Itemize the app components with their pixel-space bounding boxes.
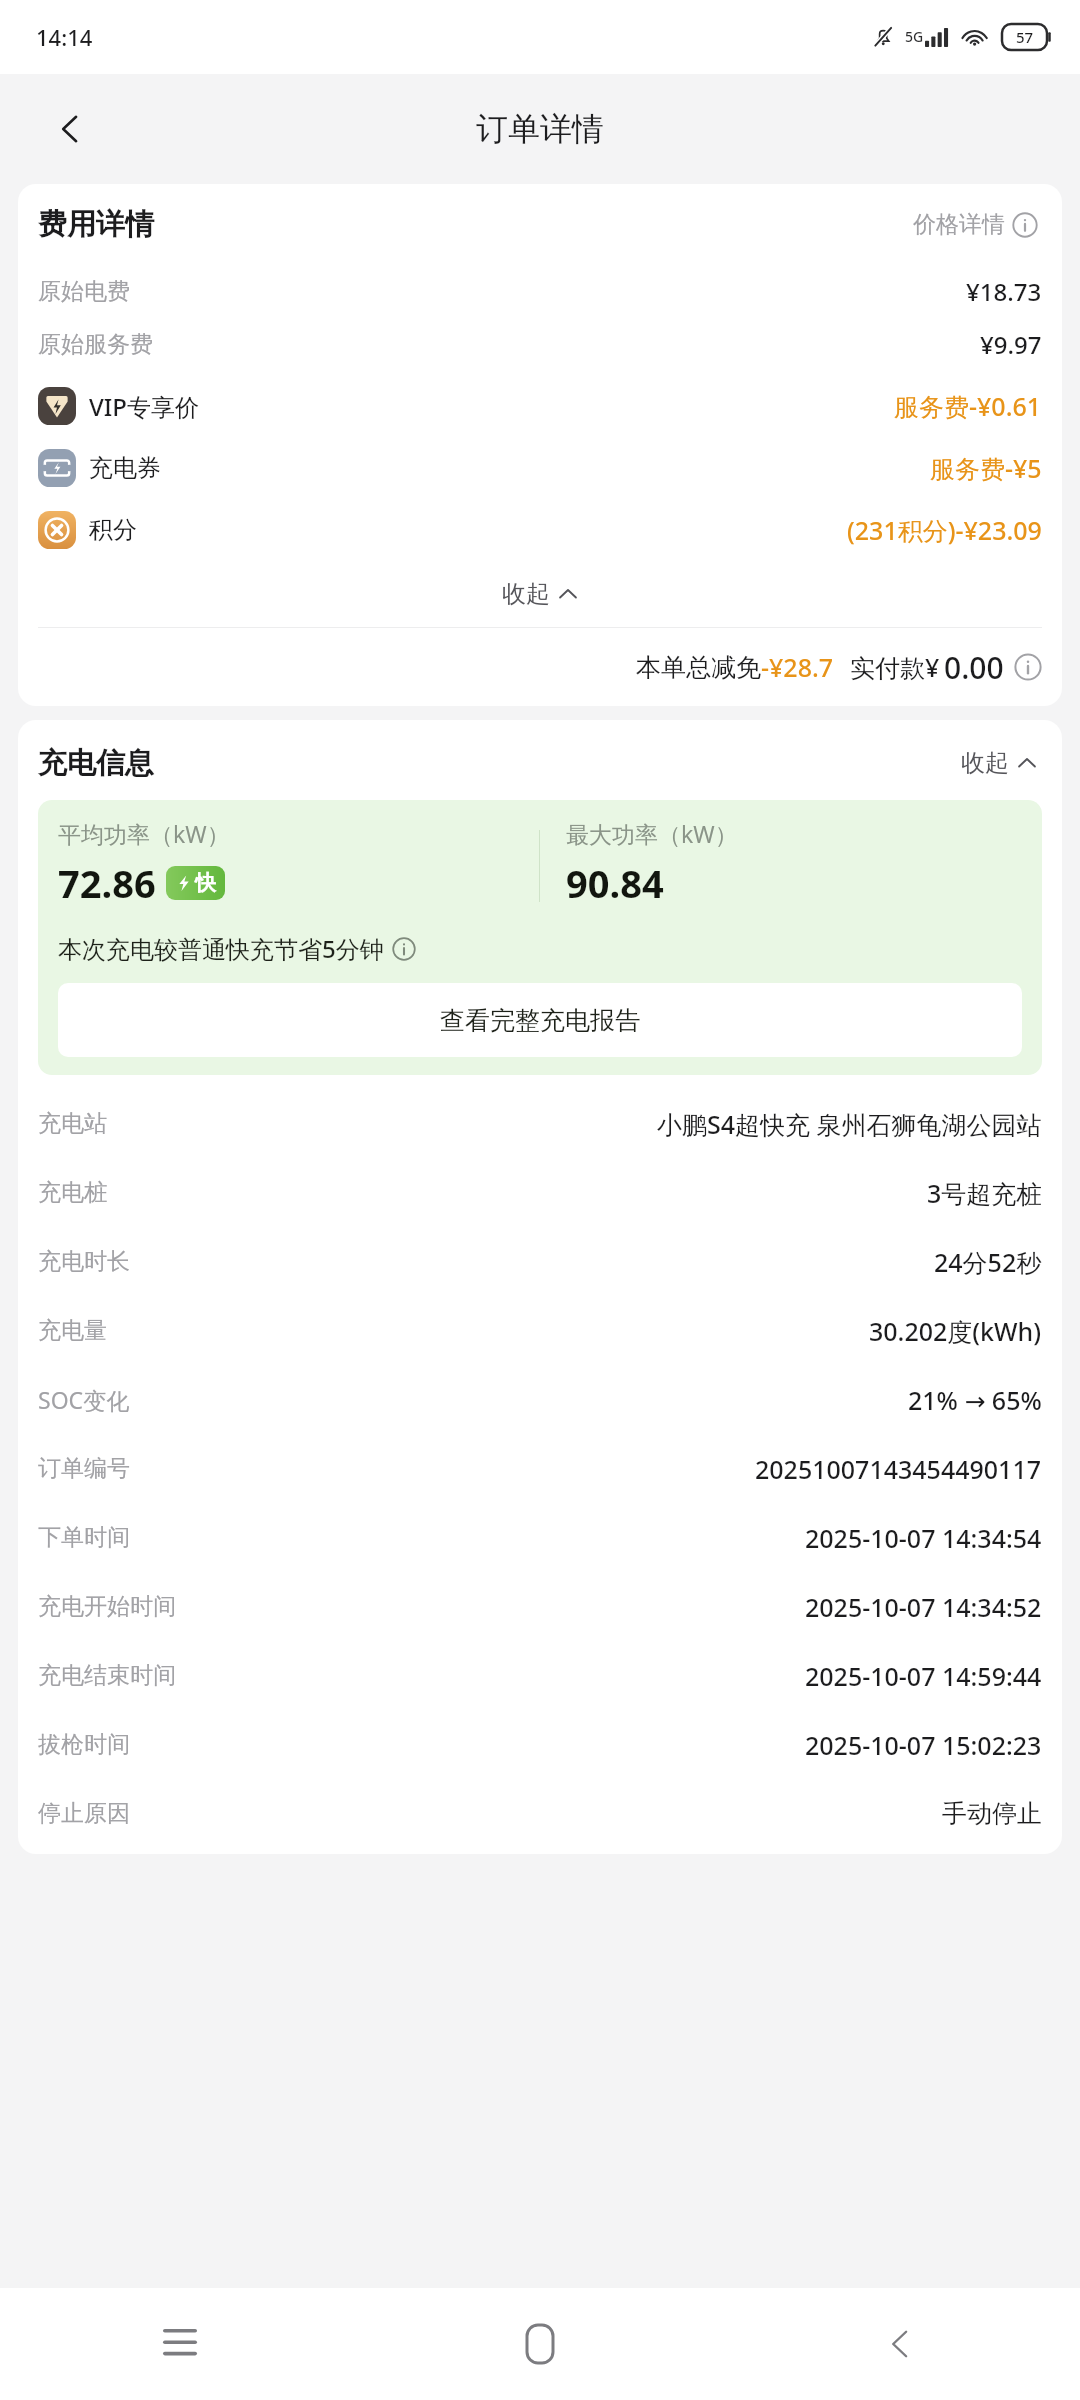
staticText: 2025-10-07 14:34:52 xyxy=(805,1590,1042,1624)
staticText: 小鹏S4超快充 泉州石狮龟湖公园站 xyxy=(657,1107,1042,1141)
staticText: 收起 xyxy=(502,579,550,609)
staticText: 原始服务费 xyxy=(38,330,153,359)
staticText: 收起 xyxy=(961,748,1009,778)
staticText: 充电站 xyxy=(38,1109,107,1138)
button[interactable]: 充电券 xyxy=(38,437,1042,499)
button[interactable]: Payment info xyxy=(1014,653,1042,681)
staticText: 服务费-¥0.61 xyxy=(894,389,1042,423)
staticText: 积分 xyxy=(89,515,137,545)
staticText: 手动停止 xyxy=(942,1798,1042,1829)
staticText: 3号超充桩 xyxy=(927,1176,1042,1210)
staticText: 原始电费 xyxy=(38,277,130,306)
staticText: 服务费-¥5 xyxy=(930,451,1042,485)
staticText: 平均功率（kW） xyxy=(58,818,230,849)
staticText: VIP专享价 xyxy=(89,390,199,423)
staticText: 停止原因 xyxy=(38,1799,130,1828)
staticText: ¥18.73 xyxy=(966,275,1042,308)
staticText: 57 xyxy=(1016,27,1034,47)
staticText: 90.84 xyxy=(566,857,664,909)
staticText: 快 xyxy=(195,870,216,896)
staticText: 拔枪时间 xyxy=(38,1730,130,1759)
button[interactable]: Home xyxy=(360,2288,720,2400)
staticText: 20251007143454490117 xyxy=(755,1452,1042,1486)
staticText: 实付款¥ xyxy=(850,650,940,684)
button[interactable]: 查看完整充电报告 xyxy=(58,983,1022,1057)
staticText: 0.00 xyxy=(944,647,1004,688)
staticText: -¥28.7 xyxy=(761,650,834,684)
staticText: 30.202度(kWh) xyxy=(869,1314,1042,1348)
staticText: 查看完整充电报告 xyxy=(440,1005,640,1036)
staticText: 费用详情 xyxy=(38,206,154,243)
staticText: 订单编号 xyxy=(38,1454,130,1483)
staticText: 21% → 65% xyxy=(908,1383,1042,1417)
staticText: 24分52秒 xyxy=(934,1245,1042,1279)
staticText: (231积分)-¥23.09 xyxy=(847,513,1042,547)
staticText: 5G xyxy=(905,27,924,46)
staticText: 充电信息 xyxy=(38,745,154,782)
button[interactable]: 积分 xyxy=(38,499,1042,561)
staticText: 充电券 xyxy=(89,453,161,483)
button[interactable]: Back xyxy=(720,2288,1080,2400)
staticText: 本单总减免 xyxy=(636,652,761,683)
button[interactable]: Back xyxy=(42,101,98,157)
staticText: 价格详情 xyxy=(913,210,1005,239)
staticText: 订单详情 xyxy=(476,109,604,149)
staticText: 充电时长 xyxy=(38,1247,130,1276)
button[interactable]: 价格详情 xyxy=(909,206,1042,243)
staticText: 充电量 xyxy=(38,1316,107,1345)
staticText: 充电桩 xyxy=(38,1178,107,1207)
staticText: 14:14 xyxy=(36,22,93,52)
staticText: 2025-10-07 14:59:44 xyxy=(805,1659,1042,1693)
button[interactable]: Saving info xyxy=(392,937,416,961)
button[interactable]: 收起 xyxy=(957,744,1042,782)
button[interactable]: 收起 xyxy=(38,561,1042,627)
staticText: 72.86 xyxy=(58,857,156,909)
staticText: 2025-10-07 15:02:23 xyxy=(805,1728,1042,1762)
staticText: 最大功率（kW） xyxy=(566,818,738,849)
staticText: 充电开始时间 xyxy=(38,1592,176,1621)
staticText: SOC变化 xyxy=(38,1384,130,1415)
staticText: 下单时间 xyxy=(38,1523,130,1552)
staticText: 2025-10-07 14:34:54 xyxy=(805,1521,1042,1555)
staticText: 本次充电较普通快充节省5分钟 xyxy=(58,932,384,965)
staticText: 充电结束时间 xyxy=(38,1661,176,1690)
button[interactable]: Recent apps xyxy=(0,2288,360,2400)
button[interactable]: VIP专享价 xyxy=(38,375,1042,437)
staticText: ¥9.97 xyxy=(980,328,1042,361)
